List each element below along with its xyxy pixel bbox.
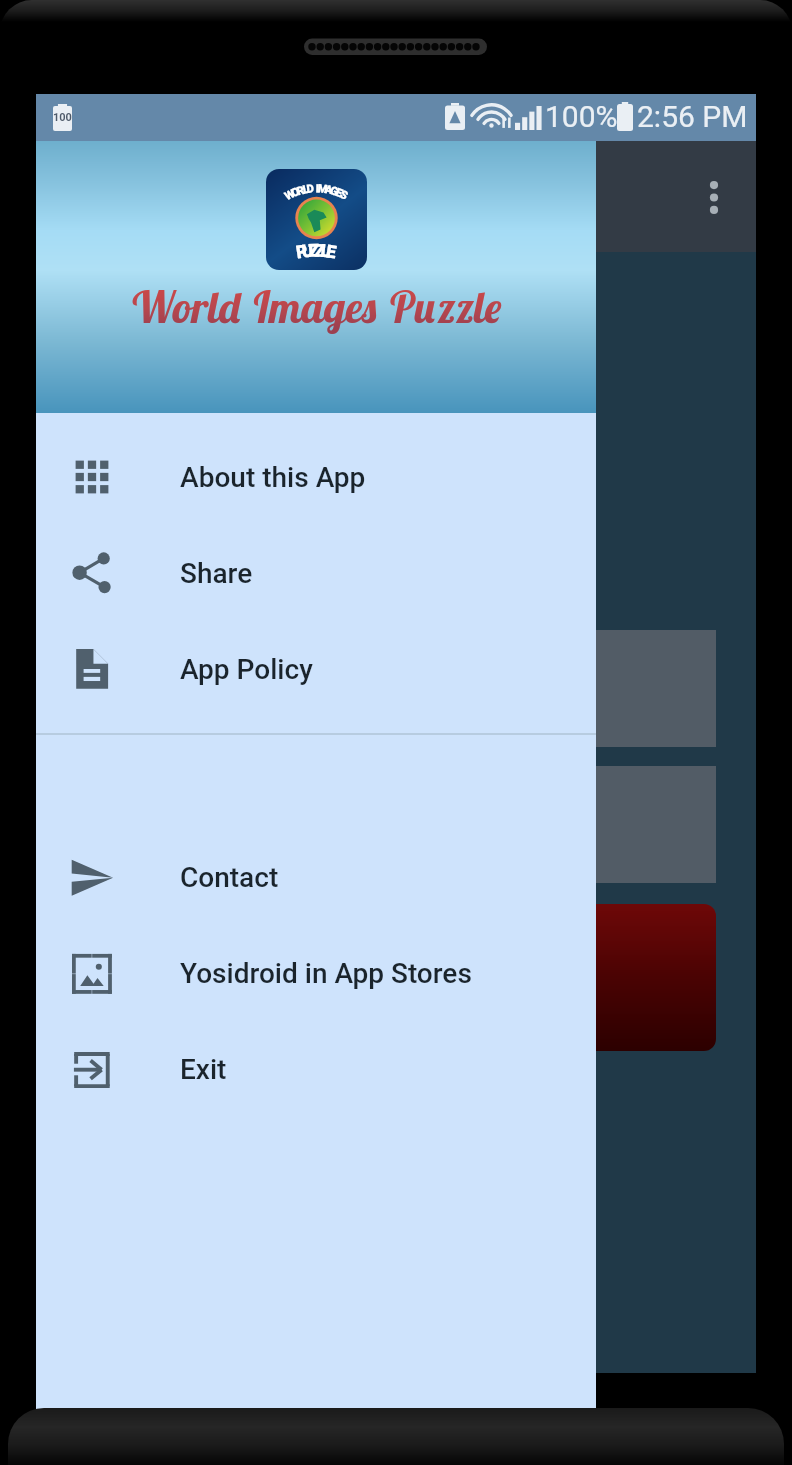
staticText: 100 — [53, 111, 72, 124]
button[interactable]: About this App — [36, 429, 596, 525]
button[interactable]: App Policy — [36, 621, 596, 717]
staticText: Share — [180, 557, 253, 590]
staticText: Contact — [180, 861, 279, 894]
button[interactable]: Exit — [36, 1021, 596, 1117]
staticText: About this App — [180, 461, 366, 494]
button[interactable]: Share — [36, 525, 596, 621]
button[interactable]: Yosidroid in App Stores — [36, 925, 596, 1021]
staticText: 100% — [545, 99, 618, 134]
staticText: 2:56 PM — [637, 99, 748, 134]
button[interactable]: More options — [686, 169, 742, 225]
button[interactable]: Contact — [36, 829, 596, 925]
staticText: Yosidroid in App Stores — [180, 957, 472, 990]
staticText: App Policy — [180, 653, 313, 686]
staticText: World Images Puzzle — [130, 280, 502, 334]
staticText: Exit — [180, 1053, 227, 1086]
